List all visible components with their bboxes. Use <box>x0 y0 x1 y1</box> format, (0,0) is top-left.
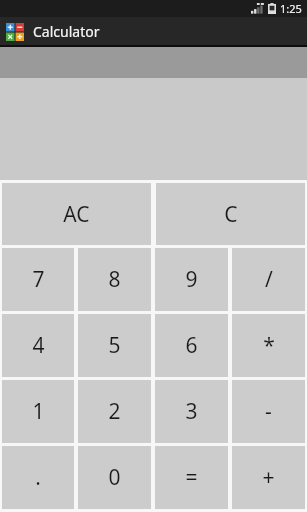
staticText: 1:25 <box>280 1 302 16</box>
button[interactable]: . <box>2 446 74 509</box>
button[interactable]: * <box>232 314 305 377</box>
button[interactable]: / <box>232 248 305 311</box>
button[interactable]: 0 <box>78 446 151 509</box>
button[interactable]: C <box>156 183 305 245</box>
button[interactable]: 8 <box>78 248 151 311</box>
staticText: 8 <box>108 265 121 294</box>
staticText: - <box>265 397 272 426</box>
staticText: 5 <box>108 331 121 360</box>
button[interactable]: = <box>155 446 228 509</box>
button[interactable]: 1 <box>2 380 74 443</box>
staticText: * <box>263 331 275 360</box>
button[interactable]: 9 <box>155 248 228 311</box>
staticText: 4 <box>32 331 45 360</box>
button[interactable]: 7 <box>2 248 74 311</box>
staticText: AC <box>63 200 90 229</box>
staticText: = <box>185 463 198 492</box>
button[interactable]: - <box>232 380 305 443</box>
button[interactable]: 6 <box>155 314 228 377</box>
button[interactable]: 5 <box>78 314 151 377</box>
staticText: 2 <box>108 397 121 426</box>
staticText: C <box>224 200 238 229</box>
other: Signal strength 3G <box>251 3 265 14</box>
button[interactable]: 2 <box>78 380 151 443</box>
staticText: Calculator <box>33 22 100 41</box>
staticText: 1 <box>32 397 45 426</box>
button[interactable]: 4 <box>2 314 74 377</box>
staticText: + <box>262 463 275 492</box>
staticText: 9 <box>185 265 198 294</box>
staticText: . <box>35 463 41 492</box>
other: Battery <box>268 3 276 14</box>
staticText: 3 <box>185 397 198 426</box>
button[interactable]: + <box>232 446 305 509</box>
button[interactable]: 3 <box>155 380 228 443</box>
staticText: 6 <box>185 331 198 360</box>
staticText: / <box>265 265 273 294</box>
button[interactable]: AC <box>2 183 151 245</box>
staticText: 7 <box>32 265 45 294</box>
staticText: 0 <box>108 463 121 492</box>
